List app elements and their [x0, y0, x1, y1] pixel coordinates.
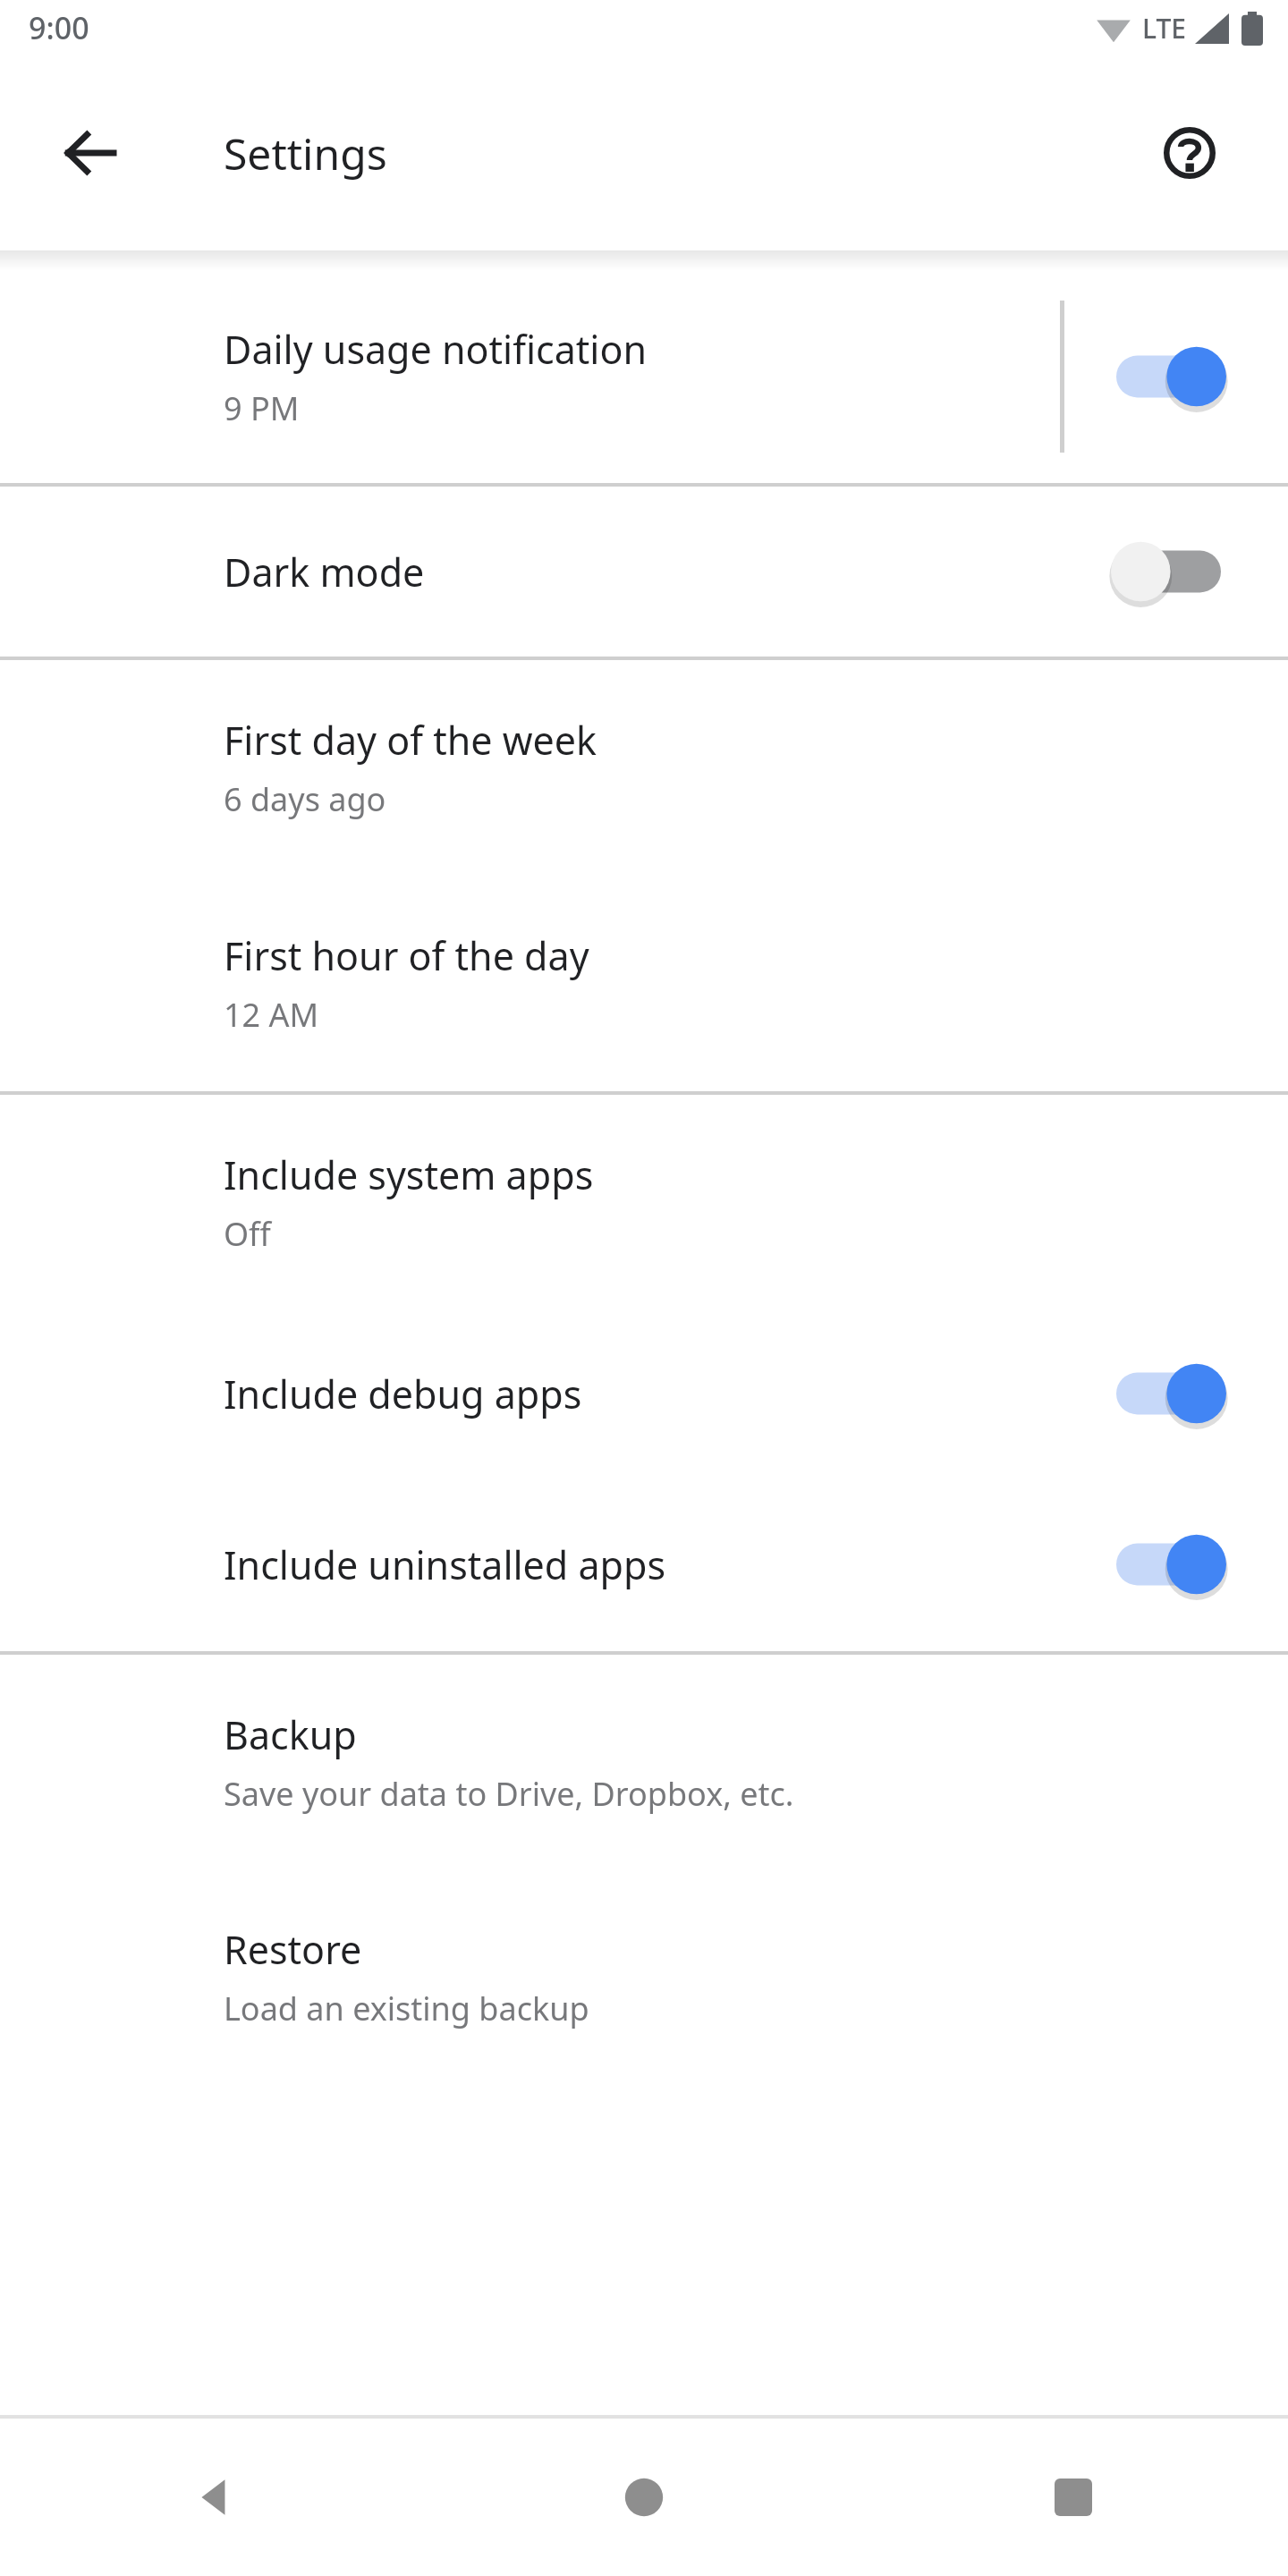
button[interactable]: Include system apps: [0, 1095, 1288, 1309]
button[interactable]: Toggle Dark mode: [1107, 518, 1241, 625]
staticText: 9 PM: [224, 386, 300, 430]
staticText: Include uninstalled apps: [224, 1538, 666, 1591]
button[interactable]: Help: [1147, 110, 1233, 196]
button[interactable]: Back: [0, 2419, 429, 2576]
button[interactable]: Restore: [0, 1869, 1288, 2084]
button[interactable]: Include uninstalled apps: [0, 1478, 1288, 1651]
staticText: Save your data to Drive, Dropbox, etc.: [224, 1772, 794, 1816]
button[interactable]: First hour of the day: [0, 875, 1288, 1091]
button[interactable]: Daily usage notification: [0, 270, 1288, 483]
staticText: 6 days ago: [224, 777, 386, 821]
button[interactable]: Toggle Include debug apps: [1107, 1340, 1241, 1447]
staticText: Backup: [224, 1708, 357, 1761]
button[interactable]: First day of the week: [0, 660, 1288, 875]
staticText: Dark mode: [224, 546, 425, 598]
staticText: Include system apps: [224, 1148, 594, 1201]
staticText: 12 AM: [224, 993, 319, 1037]
staticText: Daily usage notification: [224, 323, 648, 376]
button[interactable]: Toggle Daily usage notification: [1107, 323, 1241, 430]
button[interactable]: Backup: [0, 1655, 1288, 1869]
staticText: Load an existing backup: [224, 1987, 589, 2030]
staticText: Restore: [224, 1923, 362, 1976]
staticText: 9:00: [29, 7, 89, 48]
button[interactable]: Dark mode: [0, 487, 1288, 657]
button[interactable]: Recent apps: [859, 2419, 1288, 2576]
staticText: First day of the week: [224, 714, 597, 767]
staticText: Off: [224, 1212, 271, 1256]
staticText: First hour of the day: [224, 929, 589, 982]
button[interactable]: Home: [429, 2419, 859, 2576]
staticText: Settings: [224, 124, 387, 182]
button[interactable]: Back: [47, 110, 132, 196]
button[interactable]: Include debug apps: [0, 1309, 1288, 1478]
button[interactable]: Toggle Include uninstalled apps: [1107, 1511, 1241, 1618]
staticText: Include debug apps: [224, 1368, 582, 1420]
staticText: LTE: [1142, 10, 1186, 47]
